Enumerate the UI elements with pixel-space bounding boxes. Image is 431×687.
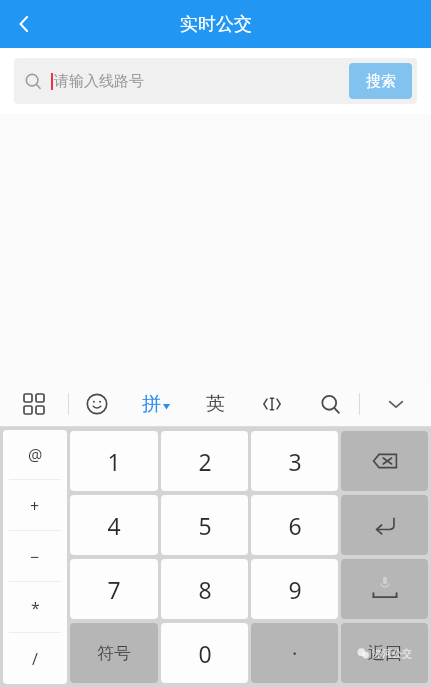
staticText: 2: [198, 446, 212, 477]
button[interactable]: 1: [70, 431, 158, 491]
staticText: 实时公交: [180, 13, 252, 36]
button[interactable]: −: [3, 531, 67, 582]
staticText: 拼: [142, 392, 161, 416]
button[interactable]: 7: [70, 559, 158, 619]
button[interactable]: 拼: [125, 381, 187, 427]
staticText: −: [30, 546, 40, 568]
button[interactable]: 8: [161, 559, 248, 619]
staticText: 6: [288, 510, 302, 541]
staticText: 返回: [368, 643, 402, 664]
button[interactable]: Backspace: [341, 431, 428, 491]
staticText: 3: [288, 446, 302, 477]
button[interactable]: /: [3, 633, 67, 684]
button[interactable]: 返回: [341, 623, 428, 683]
staticText: 7: [107, 574, 121, 605]
button[interactable]: Space: [341, 559, 428, 619]
button[interactable]: @: [3, 430, 67, 480]
button[interactable]: 9: [251, 559, 338, 619]
staticText: 5: [198, 510, 212, 541]
button[interactable]: Keyboard layouts: [0, 381, 68, 427]
staticText: /: [32, 648, 38, 670]
button[interactable]: 英: [187, 381, 243, 427]
button[interactable]: *: [3, 582, 67, 633]
staticText: 1: [107, 446, 121, 477]
staticText: *: [31, 597, 40, 619]
button[interactable]: 6: [251, 495, 338, 555]
button[interactable]: Enter: [341, 495, 428, 555]
staticText: +: [30, 495, 40, 517]
staticText: 漯河公交: [372, 647, 412, 660]
button[interactable]: 0: [161, 623, 248, 683]
staticText: 英: [206, 392, 225, 416]
button[interactable]: Move cursor: [243, 381, 301, 427]
button[interactable]: ·: [251, 623, 338, 683]
staticText: 请输入线路号: [54, 72, 144, 91]
button[interactable]: +: [3, 480, 67, 531]
button[interactable]: 2: [161, 431, 248, 491]
button[interactable]: 搜索: [349, 63, 412, 99]
button[interactable]: Hide keyboard: [360, 381, 431, 427]
button[interactable]: Search: [301, 381, 359, 427]
staticText: 8: [198, 574, 212, 605]
staticText: 0: [198, 638, 212, 669]
button[interactable]: 4: [70, 495, 158, 555]
staticText: @: [28, 444, 43, 466]
button[interactable]: 5: [161, 495, 248, 555]
button[interactable]: 3: [251, 431, 338, 491]
staticText: 4: [107, 510, 121, 541]
staticText: ·: [292, 640, 298, 667]
staticText: 9: [288, 574, 302, 605]
button[interactable]: Back: [0, 0, 48, 48]
button[interactable]: 符号: [70, 623, 158, 683]
staticText: 搜索: [366, 72, 396, 91]
button[interactable]: Emoji: [69, 381, 125, 427]
staticText: 符号: [97, 643, 131, 664]
